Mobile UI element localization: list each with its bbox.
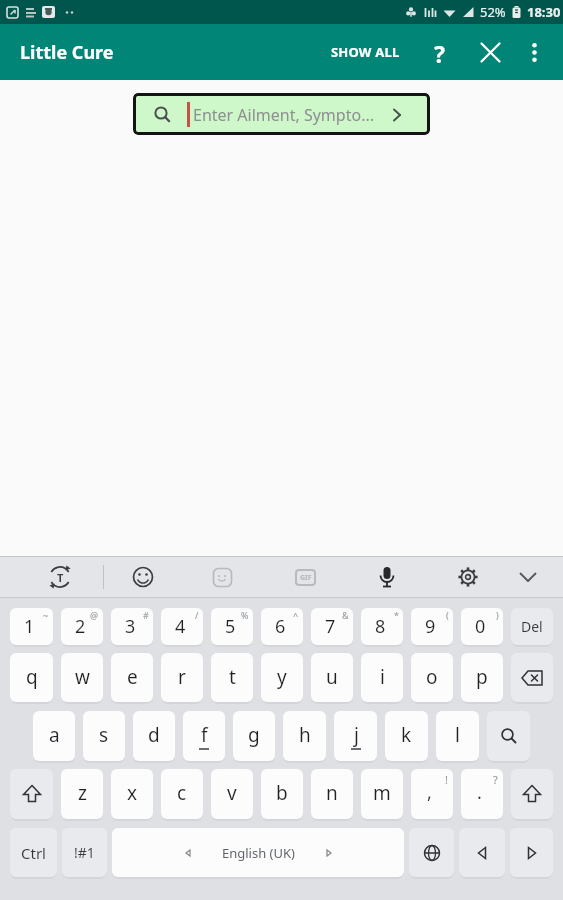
button[interactable]: Enter Ailment, Sympto... bbox=[133, 93, 430, 135]
button[interactable]: b bbox=[261, 769, 303, 819]
button[interactable] bbox=[10, 769, 53, 819]
staticText: , bbox=[427, 780, 432, 805]
button[interactable]: 2 bbox=[61, 608, 103, 645]
button[interactable]: , bbox=[411, 769, 453, 819]
staticText: Enter Ailment, Sympto... bbox=[193, 104, 374, 126]
staticText: 8 bbox=[375, 614, 386, 639]
staticText: / bbox=[195, 609, 199, 621]
button[interactable]: f bbox=[183, 711, 225, 761]
staticText: 6 bbox=[275, 614, 286, 639]
staticText: n bbox=[326, 780, 338, 806]
staticText: t bbox=[229, 664, 236, 690]
staticText: T bbox=[57, 570, 64, 585]
button[interactable] bbox=[511, 653, 553, 702]
button[interactable] bbox=[476, 38, 504, 66]
staticText: d bbox=[148, 722, 160, 748]
staticText: r bbox=[178, 664, 186, 690]
staticText: @ bbox=[90, 609, 99, 621]
button[interactable]: T bbox=[40, 557, 80, 597]
button[interactable]: u bbox=[311, 653, 353, 702]
button[interactable]: w bbox=[61, 653, 103, 702]
staticText: w bbox=[75, 664, 90, 690]
staticText: l bbox=[455, 722, 460, 748]
button[interactable]: c bbox=[161, 769, 203, 819]
button[interactable]: 0 bbox=[461, 608, 503, 645]
button[interactable]: . bbox=[461, 769, 503, 819]
staticText: 4 bbox=[175, 614, 186, 639]
button[interactable]: r bbox=[161, 653, 203, 702]
button[interactable]: m bbox=[361, 769, 403, 819]
staticText: ! bbox=[445, 772, 448, 787]
button[interactable] bbox=[409, 828, 454, 877]
staticText: English (UK) bbox=[222, 844, 295, 862]
staticText: p bbox=[476, 664, 488, 690]
button[interactable]: n bbox=[311, 769, 353, 819]
button[interactable]: k bbox=[385, 711, 428, 761]
button[interactable]: h bbox=[283, 711, 326, 761]
button[interactable]: 8 bbox=[361, 608, 403, 645]
button[interactable]: x bbox=[111, 769, 153, 819]
button[interactable] bbox=[123, 557, 163, 597]
button[interactable] bbox=[487, 711, 530, 761]
button[interactable]: 1 bbox=[10, 608, 53, 645]
button[interactable]: Del bbox=[511, 608, 553, 645]
staticText: m bbox=[373, 780, 391, 806]
button[interactable] bbox=[511, 769, 553, 819]
button[interactable]: 3 bbox=[111, 608, 153, 645]
button[interactable]: d bbox=[133, 711, 175, 761]
button[interactable]: GIF bbox=[285, 557, 325, 597]
staticText: ? bbox=[493, 772, 498, 787]
button[interactable] bbox=[459, 828, 505, 877]
button[interactable]: 5 bbox=[211, 608, 253, 645]
button[interactable]: e bbox=[111, 653, 153, 702]
button[interactable]: 4 bbox=[161, 608, 203, 645]
button[interactable] bbox=[367, 557, 407, 597]
staticText: GIF bbox=[300, 573, 312, 583]
button[interactable]: 6 bbox=[261, 608, 303, 645]
button[interactable] bbox=[202, 557, 242, 597]
button[interactable]: t bbox=[211, 653, 253, 702]
staticText: 1 bbox=[24, 614, 35, 639]
staticText: x bbox=[127, 780, 138, 806]
button[interactable]: q bbox=[10, 653, 53, 702]
button[interactable]: 9 bbox=[411, 608, 453, 645]
button[interactable] bbox=[510, 828, 553, 877]
button[interactable]: o bbox=[411, 653, 453, 702]
button[interactable] bbox=[523, 41, 545, 63]
staticText: y bbox=[277, 664, 287, 690]
staticText: g bbox=[248, 722, 260, 748]
button[interactable]: y bbox=[261, 653, 303, 702]
staticText: % bbox=[241, 609, 249, 621]
button[interactable]: 7 bbox=[311, 608, 353, 645]
staticText: 2 bbox=[75, 614, 86, 639]
button[interactable]: p bbox=[461, 653, 503, 702]
button[interactable]: v bbox=[211, 769, 253, 819]
staticText: Little Cure bbox=[20, 40, 114, 65]
staticText: * bbox=[394, 609, 399, 621]
staticText: c bbox=[177, 780, 187, 806]
staticText: e bbox=[127, 664, 138, 690]
staticText: ) bbox=[496, 609, 499, 621]
button[interactable]: a bbox=[33, 711, 75, 761]
button[interactable]: i bbox=[361, 653, 403, 702]
button[interactable] bbox=[448, 557, 488, 597]
button[interactable]: ? bbox=[425, 38, 453, 66]
staticText: o bbox=[426, 664, 438, 690]
staticText: 0 bbox=[475, 614, 486, 639]
button[interactable]: English (UK) bbox=[112, 828, 404, 877]
button[interactable]: z bbox=[61, 769, 103, 819]
staticText: f bbox=[201, 722, 208, 748]
button[interactable]: g bbox=[233, 711, 275, 761]
button[interactable]: !#1 bbox=[62, 828, 107, 877]
button[interactable]: j bbox=[334, 711, 377, 761]
button[interactable]: s bbox=[83, 711, 125, 761]
staticText: q bbox=[26, 664, 38, 690]
staticText: ? bbox=[434, 38, 445, 66]
staticText: 52% bbox=[480, 3, 506, 21]
button[interactable]: SHOW ALL bbox=[331, 43, 400, 61]
button[interactable]: l bbox=[436, 711, 479, 761]
button[interactable] bbox=[508, 557, 548, 597]
button[interactable]: Ctrl bbox=[10, 828, 57, 877]
staticText: SHOW ALL bbox=[331, 43, 400, 61]
staticText: 7 bbox=[325, 614, 336, 639]
